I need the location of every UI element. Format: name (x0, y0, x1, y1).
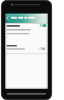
button[interactable] (5, 23, 48, 36)
button[interactable] (39, 23, 48, 28)
button[interactable] (5, 43, 48, 52)
button[interactable] (5, 14, 11, 23)
button[interactable] (38, 46, 47, 51)
